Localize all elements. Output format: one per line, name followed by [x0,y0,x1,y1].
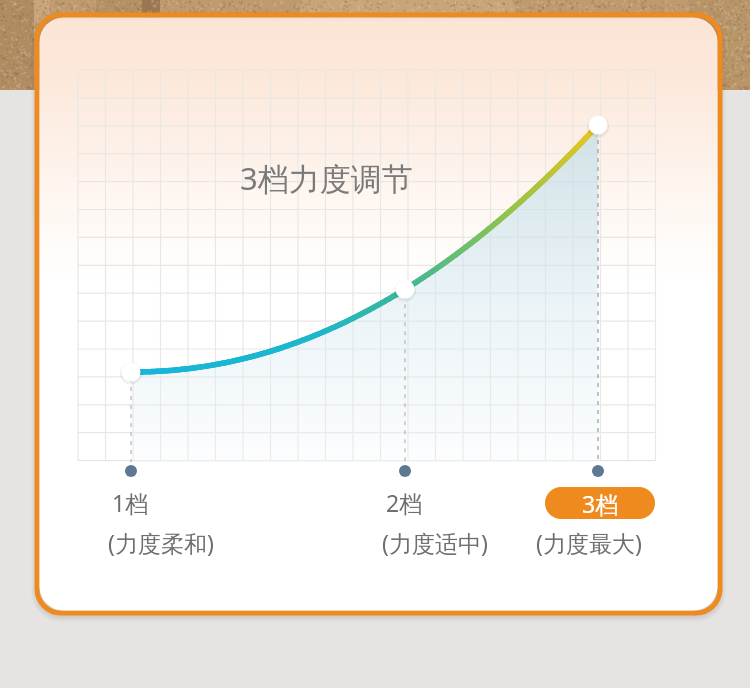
button[interactable]: (力度适中) [382,527,512,557]
staticText: (力度适中) [382,527,488,557]
staticText: 3档 [582,488,619,519]
staticText: 3档力度调节 [240,157,413,199]
staticText: (力度柔和) [108,527,214,557]
button[interactable]: 1档 [112,487,172,517]
staticText: (力度最大) [536,527,642,557]
staticText: 2档 [386,487,423,517]
button[interactable]: 2档 [386,487,446,517]
staticText: 1档 [112,487,149,517]
button[interactable]: 3档 力度最大 [545,487,655,519]
button[interactable]: (力度最大) [536,527,666,557]
button[interactable]: (力度柔和) [108,527,238,557]
